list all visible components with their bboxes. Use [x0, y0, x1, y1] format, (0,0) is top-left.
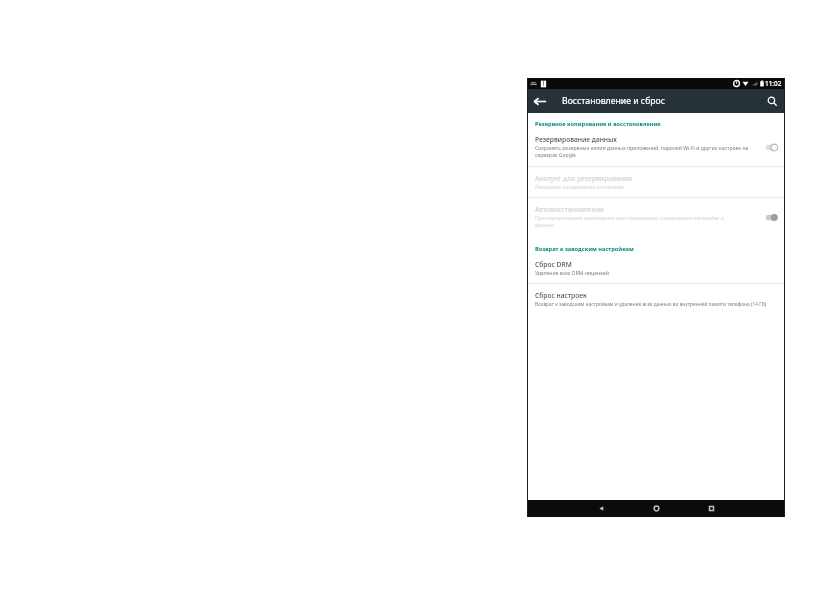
staticText: Автовосстановление	[535, 205, 604, 214]
staticText: Восстановление и сброс	[562, 95, 666, 107]
button[interactable]: Home	[629, 500, 684, 517]
button[interactable]: Автовосстановление	[527, 198, 785, 235]
staticText: Резервное копирование отключено	[535, 184, 624, 191]
button[interactable]: Аккаунт для резервирования	[527, 167, 785, 197]
button[interactable]: Back	[574, 500, 629, 517]
staticText: Сброс настроек	[535, 291, 587, 300]
staticText: Резервное копирование и восстановление	[535, 120, 661, 128]
button[interactable]: Recent apps	[684, 500, 739, 517]
staticText: Аккаунт для резервирования	[535, 174, 633, 183]
staticText: При переустановке приложения восстанавли…	[535, 215, 725, 229]
button[interactable]: Сброс DRM	[527, 255, 785, 283]
button[interactable]: Сброс настроек	[527, 284, 785, 314]
staticText: Возврат к заводским настройкам	[535, 245, 634, 253]
staticText: Сохранять резервные копии данных приложе…	[535, 145, 759, 159]
staticText: Сброс DRM	[535, 260, 572, 269]
staticText: Резервирование данных	[535, 135, 617, 144]
staticText: Возврат к заводским настройкам и удалени…	[535, 301, 767, 308]
staticText: 11:02	[765, 79, 782, 88]
staticText: Удаление всех DRM-лицензий	[535, 270, 609, 277]
button[interactable]: Search	[761, 89, 784, 113]
button[interactable]: Резервирование данных	[527, 131, 785, 166]
button[interactable]: Back	[527, 89, 553, 113]
